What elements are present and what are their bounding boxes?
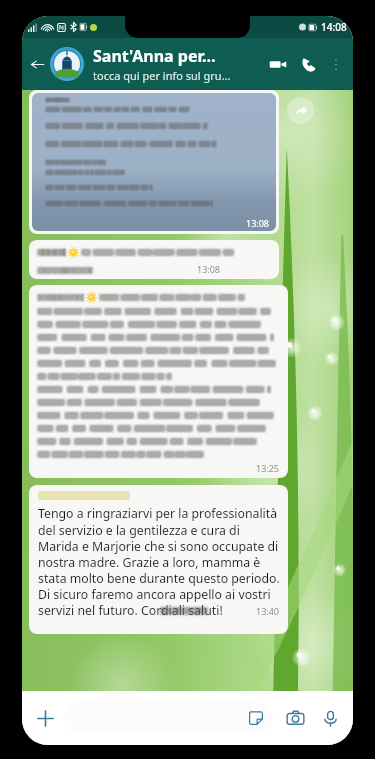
button[interactable]: Attach — [30, 703, 60, 733]
button[interactable]: 13:08 — [29, 240, 279, 279]
staticText: Tengo a ringraziarvi per la professional… — [38, 505, 280, 618]
button[interactable]: Back — [26, 53, 48, 75]
staticText: Sant'Anna per… — [93, 45, 216, 67]
button[interactable]: 13:08 — [29, 90, 279, 234]
button[interactable]: Sant'Anna per… — [50, 45, 263, 83]
staticText: 13:25 — [256, 462, 280, 474]
staticText: tocca qui per info sul gru… — [93, 68, 231, 83]
button[interactable]: Camera — [280, 703, 310, 733]
button[interactable]: Voice message — [315, 703, 345, 733]
button[interactable]: Voice call — [293, 49, 323, 79]
button[interactable]: 13:25 — [29, 285, 288, 478]
staticText: 13:08 — [197, 263, 221, 275]
staticText: 13:40 — [256, 605, 280, 617]
staticText: 14:08 — [321, 20, 347, 34]
button[interactable]: Video call — [263, 49, 293, 79]
button[interactable]: Forward — [287, 97, 314, 124]
staticText: 13:08 — [246, 217, 270, 229]
button[interactable]: Sticker — [243, 705, 269, 731]
button[interactable]: More options — [323, 51, 349, 77]
button[interactable]: Tengo a ringraziarvi per la professional… — [29, 485, 288, 634]
button[interactable]: Sticker — [64, 702, 273, 734]
